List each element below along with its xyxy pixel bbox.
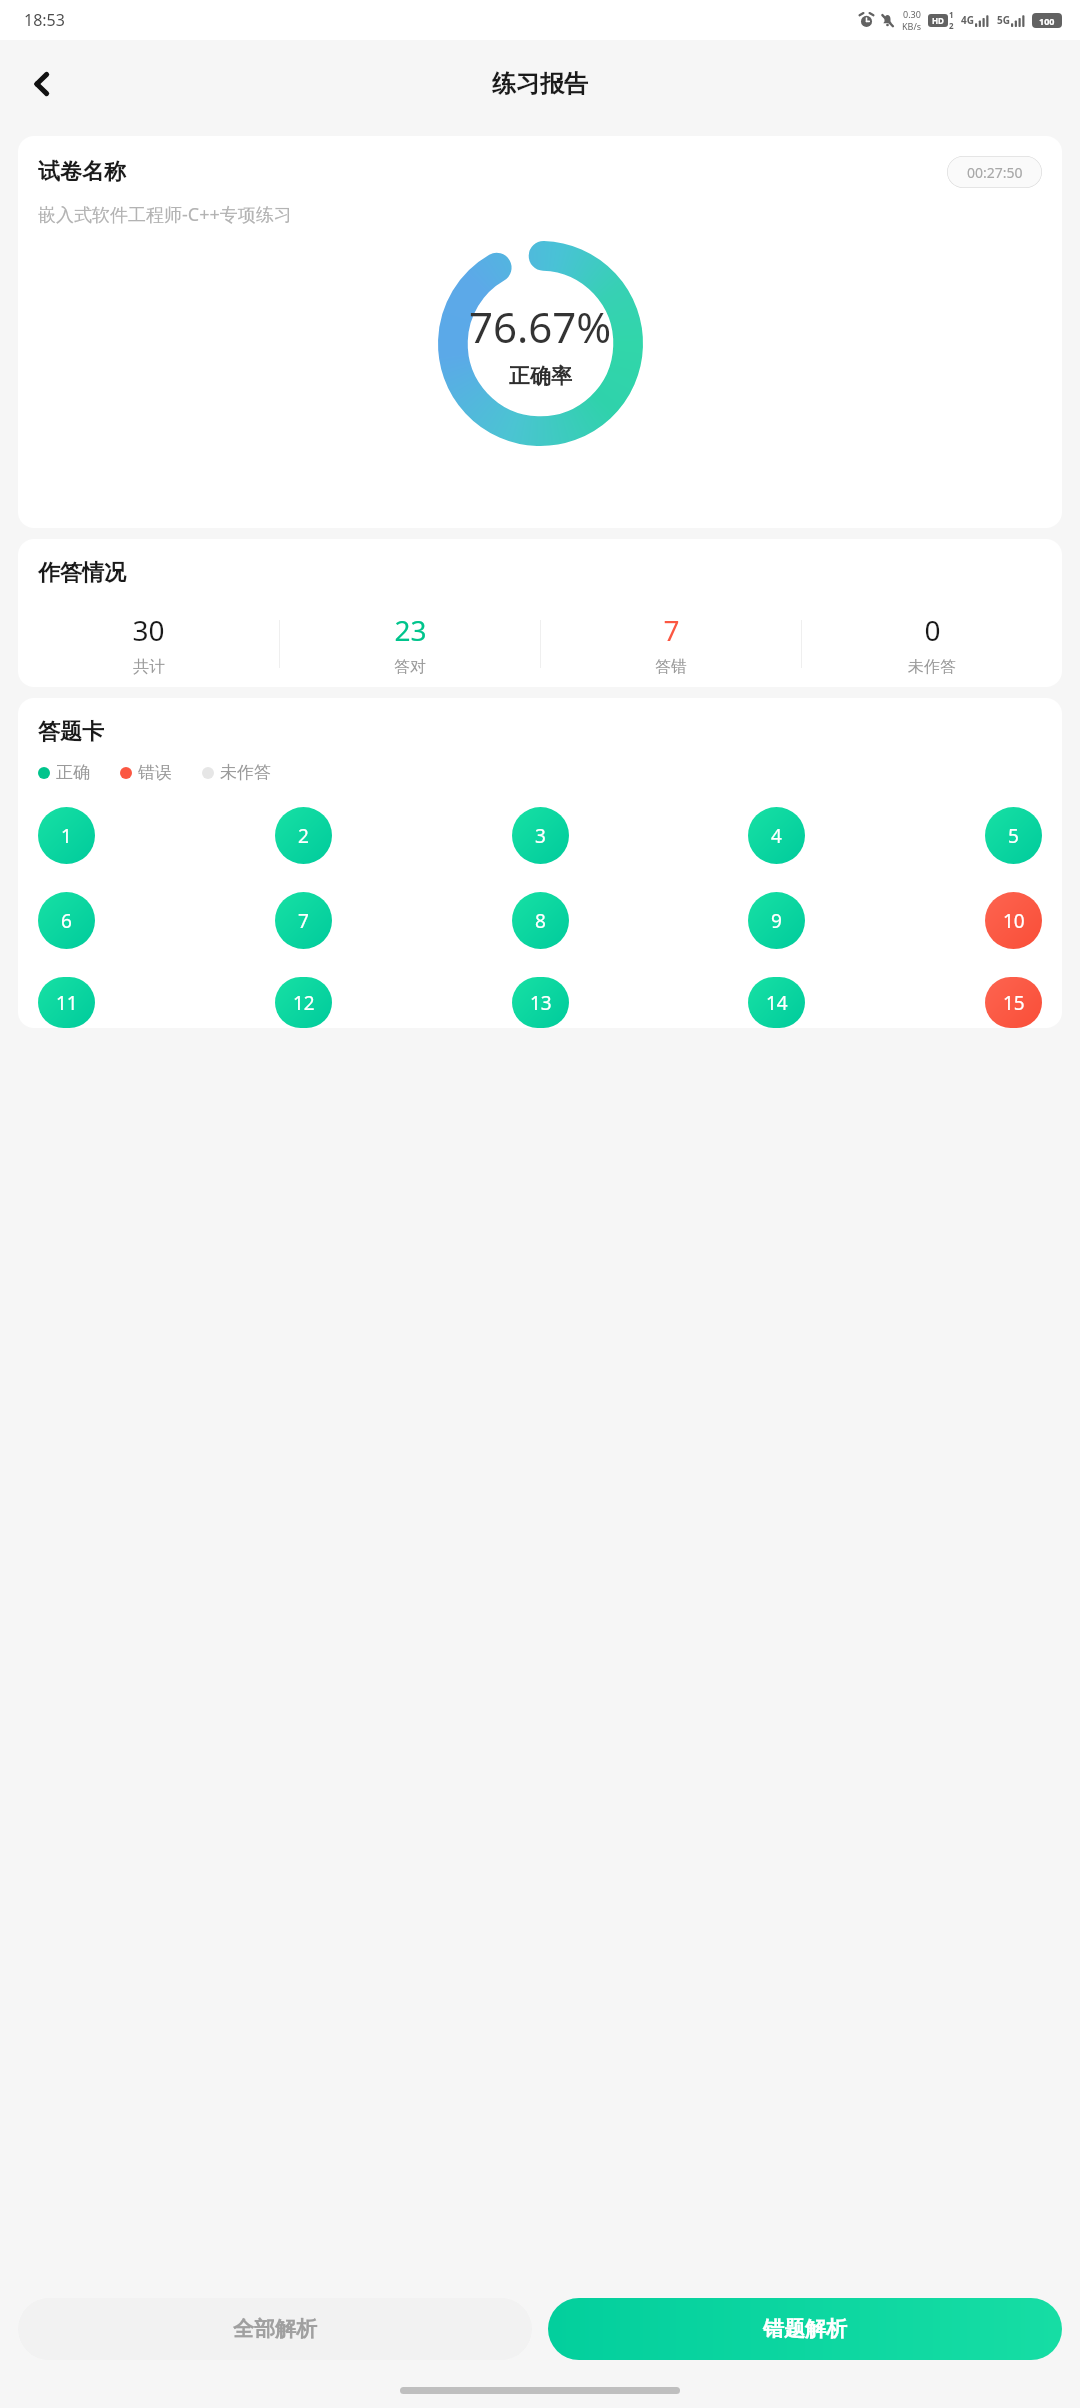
- button[interactable]: 3: [512, 807, 569, 864]
- button[interactable]: 7: [275, 892, 332, 949]
- staticText: 2: [949, 20, 954, 31]
- button[interactable]: 15: [985, 977, 1042, 1028]
- staticText: 正确率: [509, 363, 572, 389]
- staticText: 0.30: [903, 8, 921, 20]
- staticText: 8: [535, 908, 546, 934]
- staticText: 全部解析: [233, 2316, 317, 2342]
- button[interactable]: 9: [748, 892, 805, 949]
- button[interactable]: Back: [14, 56, 70, 112]
- button[interactable]: 11: [38, 977, 95, 1028]
- staticText: 试卷名称: [38, 158, 126, 186]
- staticText: 11: [56, 990, 78, 1016]
- staticText: 4G: [961, 13, 974, 27]
- button[interactable]: 14: [748, 977, 805, 1028]
- button[interactable]: 全部解析: [18, 2298, 532, 2360]
- button[interactable]: 12: [275, 977, 332, 1028]
- staticText: KB/s: [902, 20, 922, 32]
- staticText: 答对: [394, 657, 426, 677]
- staticText: 嵌入式软件工程师-C++专项练习: [38, 202, 292, 227]
- staticText: 答题卡: [38, 718, 104, 746]
- staticText: 错题解析: [763, 2316, 847, 2342]
- staticText: 练习报告: [492, 69, 588, 99]
- button[interactable]: 00:27:50: [947, 156, 1042, 188]
- staticText: 0: [924, 611, 941, 649]
- staticText: 12: [293, 990, 315, 1016]
- staticText: 00:27:50: [967, 163, 1023, 182]
- staticText: 作答情况: [38, 559, 126, 587]
- staticText: 6: [61, 908, 72, 934]
- staticText: 未作答: [908, 657, 956, 677]
- staticText: 14: [766, 990, 788, 1016]
- button[interactable]: 5: [985, 807, 1042, 864]
- button[interactable]: 10: [985, 892, 1042, 949]
- button[interactable]: 1: [38, 807, 95, 864]
- staticText: 4: [771, 823, 782, 849]
- staticText: 18:53: [24, 9, 65, 31]
- staticText: 23: [394, 611, 427, 649]
- staticText: 正确: [56, 762, 90, 783]
- staticText: 10: [1003, 908, 1025, 934]
- staticText: 9: [771, 908, 782, 934]
- staticText: 76.67%: [469, 298, 612, 355]
- staticText: 3: [535, 823, 546, 849]
- button[interactable]: 2: [275, 807, 332, 864]
- staticText: 共计: [133, 657, 165, 677]
- staticText: HD: [932, 15, 944, 26]
- staticText: 错误: [138, 762, 172, 783]
- staticText: 100: [1039, 15, 1055, 27]
- button[interactable]: 8: [512, 892, 569, 949]
- staticText: 2: [298, 823, 309, 849]
- button[interactable]: 错题解析: [548, 2298, 1062, 2360]
- staticText: 答错: [655, 657, 687, 677]
- staticText: 30: [132, 611, 165, 649]
- staticText: 1: [949, 9, 954, 20]
- button[interactable]: 13: [512, 977, 569, 1028]
- button[interactable]: 6: [38, 892, 95, 949]
- staticText: 1: [61, 823, 72, 849]
- staticText: 13: [530, 990, 552, 1016]
- staticText: 7: [663, 611, 680, 649]
- staticText: 5G: [997, 13, 1010, 27]
- staticText: 5: [1008, 823, 1019, 849]
- staticText: 7: [298, 908, 309, 934]
- staticText: 未作答: [220, 762, 271, 783]
- button[interactable]: 4: [748, 807, 805, 864]
- staticText: 15: [1003, 990, 1025, 1016]
